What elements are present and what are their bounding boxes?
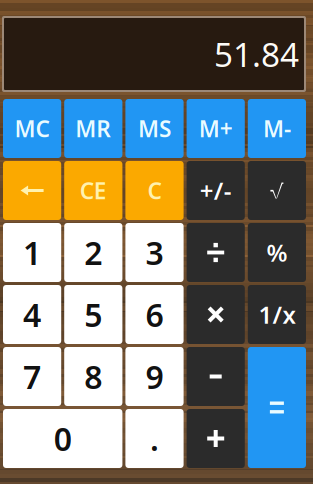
staticText: . (150, 417, 159, 460)
staticText: C (147, 175, 161, 205)
staticText: M- (263, 113, 291, 143)
staticText: 9 (145, 355, 163, 398)
staticText: 8 (84, 355, 102, 398)
staticText: 6 (145, 293, 163, 336)
staticText: MC (15, 113, 50, 143)
button[interactable]: 9 (125, 347, 184, 406)
button[interactable]: Square root (248, 161, 306, 220)
button[interactable]: MS (125, 99, 184, 158)
button[interactable]: % (248, 223, 306, 282)
button[interactable]: 4 (3, 285, 61, 344)
staticText: CE (80, 175, 107, 205)
button[interactable]: Equals (248, 347, 306, 468)
button[interactable]: CE (64, 161, 122, 220)
button[interactable]: 2 (64, 223, 122, 282)
button[interactable]: Divide (187, 223, 245, 282)
button[interactable]: Backspace (3, 161, 61, 220)
button[interactable]: 0 (3, 409, 122, 468)
button[interactable]: . (125, 409, 184, 468)
button[interactable]: M+ (187, 99, 245, 158)
button[interactable]: C (125, 161, 184, 220)
button[interactable]: +/- (187, 161, 245, 220)
button[interactable]: Multiply (187, 285, 245, 344)
staticText: M+ (199, 113, 233, 143)
button[interactable]: Plus (187, 409, 245, 468)
button[interactable]: 6 (125, 285, 184, 344)
staticText: 51.84 (214, 32, 299, 76)
button[interactable]: Minus (187, 347, 245, 406)
staticText: 2 (84, 231, 102, 274)
button[interactable]: 3 (125, 223, 184, 282)
button[interactable]: MR (64, 99, 122, 158)
staticText: 5 (84, 293, 102, 336)
staticText: 1/x (258, 299, 295, 330)
button[interactable]: 5 (64, 285, 122, 344)
button[interactable]: MC (3, 99, 61, 158)
staticText: MR (75, 113, 111, 143)
button[interactable]: 8 (64, 347, 122, 406)
staticText: 0 (54, 417, 72, 460)
button[interactable]: M- (248, 99, 306, 158)
staticText: MS (138, 113, 171, 143)
staticText: 3 (145, 231, 163, 274)
staticText: 1 (23, 231, 41, 274)
button[interactable]: 7 (3, 347, 61, 406)
button[interactable]: 1/x (248, 285, 306, 344)
staticText: % (266, 237, 287, 268)
staticText: +/- (200, 175, 232, 206)
staticText: 7 (23, 355, 41, 398)
staticText: 4 (23, 293, 41, 336)
button[interactable]: 1 (3, 223, 61, 282)
